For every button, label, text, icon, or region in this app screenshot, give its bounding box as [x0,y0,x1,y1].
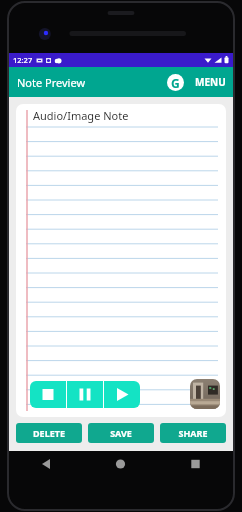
button[interactable]: Play [104,381,140,408]
staticText: G [171,75,180,91]
staticText: SAVE [110,427,132,439]
button[interactable]: DELETE [16,423,82,443]
staticText: 12:27 [13,55,33,65]
staticText: SHARE [178,427,208,439]
staticText: MENU [195,75,226,89]
button[interactable]: Recents [158,451,233,477]
button[interactable]: Stop [30,381,66,408]
button[interactable]: Pause [67,381,103,408]
button[interactable]: SHARE [160,423,226,443]
staticText: Audio/Image Note [33,108,129,123]
button[interactable]: Home [83,451,158,477]
button[interactable]: Audio/Image Note [16,104,226,417]
staticText: DELETE [33,427,65,439]
button[interactable]: Attached image [190,379,220,409]
staticText: Note Preview [17,75,86,90]
button[interactable]: Back [9,451,83,477]
button[interactable]: MENU [188,69,233,95]
button[interactable]: Google sign in [162,69,188,95]
button[interactable]: SAVE [88,423,154,443]
